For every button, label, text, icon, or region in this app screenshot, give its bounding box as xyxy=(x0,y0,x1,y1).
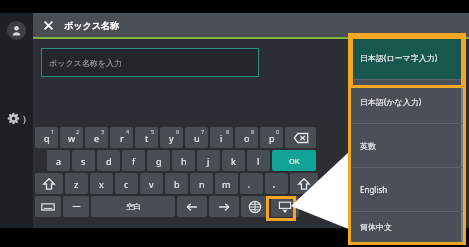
staticText: 5 xyxy=(151,128,155,135)
staticText: p xyxy=(269,132,275,144)
staticText: y xyxy=(169,132,174,144)
staticText: w xyxy=(68,132,76,144)
button[interactable]: w xyxy=(60,127,83,148)
staticText: u xyxy=(194,132,200,144)
button[interactable]: e xyxy=(85,127,108,148)
button[interactable]: Account xyxy=(7,21,26,40)
button[interactable]: j xyxy=(197,150,220,171)
staticText: ボックス名称 xyxy=(64,20,119,31)
staticText: 0 xyxy=(276,128,280,135)
button[interactable]: g xyxy=(147,150,170,171)
button[interactable]: a xyxy=(47,150,70,171)
staticText: 簡体中文 xyxy=(360,222,392,232)
staticText: d xyxy=(106,155,112,167)
staticText: 日本語(ローマ字入力) xyxy=(360,52,438,63)
staticText: 英数 xyxy=(360,141,376,151)
button[interactable]: z xyxy=(65,173,88,194)
button[interactable]: Account xyxy=(0,13,33,228)
staticText: e xyxy=(94,132,100,144)
staticText: x xyxy=(99,178,104,190)
button[interactable]: i xyxy=(210,127,233,148)
button[interactable]: c xyxy=(115,173,138,194)
staticText: ) xyxy=(23,113,26,125)
staticText: t xyxy=(145,132,149,144)
button[interactable]: v xyxy=(140,173,163,194)
staticText: v xyxy=(149,178,154,190)
staticText: English xyxy=(360,184,388,195)
staticText: g xyxy=(156,155,162,167)
staticText: h xyxy=(181,155,187,167)
staticText: o xyxy=(244,132,250,144)
button[interactable]: Shift xyxy=(35,173,63,194)
staticText: 空白 xyxy=(126,202,141,211)
staticText: 。 xyxy=(272,178,281,189)
button[interactable]: 日本語(ローマ字入力) xyxy=(351,36,463,79)
button[interactable]: h xyxy=(172,150,195,171)
button[interactable]: 簡体中文 xyxy=(351,212,463,242)
button[interactable]: s xyxy=(72,150,95,171)
staticText: f xyxy=(132,155,136,167)
button[interactable]: OK xyxy=(272,150,316,171)
button[interactable]: Settings xyxy=(7,112,20,125)
button[interactable]: n xyxy=(190,173,213,194)
staticText: r xyxy=(120,132,124,144)
button[interactable]: x xyxy=(90,173,113,194)
staticText: 9 xyxy=(251,128,255,135)
staticText: 、 xyxy=(247,178,256,189)
button[interactable]: r xyxy=(110,127,133,148)
staticText: 1 xyxy=(51,128,55,135)
button[interactable]: b xyxy=(165,173,188,194)
staticText: 8 xyxy=(226,128,230,135)
button[interactable]: 空白 xyxy=(91,196,175,217)
button[interactable]: Change input language xyxy=(241,196,269,217)
staticText: 7 xyxy=(201,128,205,135)
button[interactable]: m xyxy=(215,173,238,194)
button[interactable]: p xyxy=(260,127,283,148)
staticText: c xyxy=(124,178,129,190)
button[interactable]: 。 xyxy=(265,173,288,194)
staticText: ー xyxy=(72,201,81,212)
button[interactable]: d xyxy=(97,150,120,171)
button[interactable]: t xyxy=(135,127,158,148)
staticText: s xyxy=(81,155,86,167)
button[interactable]: l xyxy=(247,150,270,171)
staticText: k xyxy=(231,155,236,167)
staticText: i xyxy=(220,132,223,144)
button[interactable]: Backspace xyxy=(285,127,316,148)
staticText: 日本語(かな入力) xyxy=(360,96,422,107)
staticText: z xyxy=(74,178,79,190)
staticText: 3 xyxy=(101,128,105,135)
staticText: 6 xyxy=(176,128,180,135)
button[interactable]: Cursor right xyxy=(209,196,239,217)
button[interactable]: y xyxy=(160,127,183,148)
button[interactable]: 、 xyxy=(240,173,263,194)
staticText: a xyxy=(56,155,62,167)
button[interactable]: u xyxy=(185,127,208,148)
staticText: n xyxy=(199,178,205,190)
button[interactable]: Close xyxy=(41,18,56,33)
button[interactable]: f xyxy=(122,150,145,171)
button[interactable]: q xyxy=(35,127,58,148)
button[interactable]: Symbols xyxy=(35,196,61,217)
staticText: 2 xyxy=(76,128,80,135)
staticText: OK xyxy=(289,156,300,166)
button[interactable]: Hide keyboard xyxy=(271,196,299,217)
staticText: l xyxy=(257,155,260,167)
staticText: m xyxy=(222,178,231,190)
button[interactable]: ー xyxy=(63,196,89,217)
button[interactable]: 英数 xyxy=(351,124,463,167)
button[interactable]: o xyxy=(235,127,258,148)
button[interactable]: k xyxy=(222,150,245,171)
staticText: q xyxy=(44,132,50,144)
staticText: 4 xyxy=(126,128,130,135)
staticText: ボックス名称を入力 xyxy=(49,58,122,68)
staticText: j xyxy=(207,155,210,167)
button[interactable]: Cursor left xyxy=(177,196,207,217)
button[interactable]: Shift xyxy=(290,173,318,194)
staticText: b xyxy=(174,178,180,190)
button[interactable]: ボックス名称を入力 xyxy=(41,48,259,77)
button[interactable]: 日本語(かな入力) xyxy=(351,80,463,123)
button[interactable]: English xyxy=(351,168,463,211)
